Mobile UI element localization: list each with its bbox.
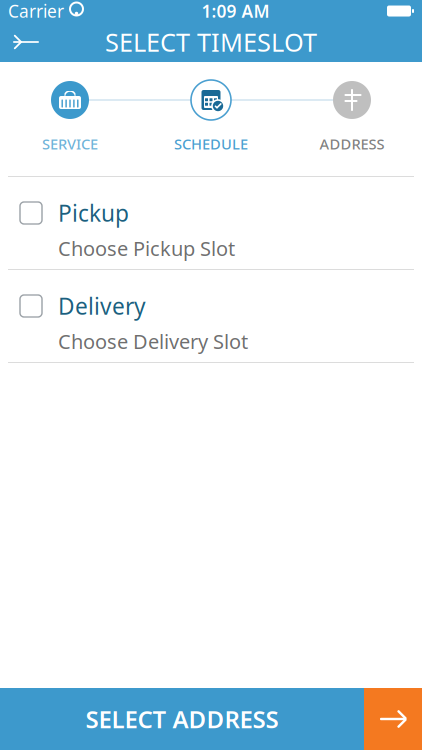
staticText: Carrier xyxy=(8,0,64,22)
staticText: Choose Delivery Slot xyxy=(58,328,248,355)
button[interactable]: Next xyxy=(364,688,422,750)
button[interactable]: Delivery xyxy=(0,270,422,362)
staticText: ADDRESS xyxy=(319,134,384,153)
button[interactable]: Back xyxy=(0,22,52,62)
staticText: SELECT ADDRESS xyxy=(85,703,278,735)
staticText: Choose Pickup Slot xyxy=(58,235,235,262)
staticText: Pickup xyxy=(58,198,129,228)
staticText: SERVICE xyxy=(42,134,98,153)
staticText: 1:09 AM xyxy=(201,0,269,22)
button[interactable]: SELECT ADDRESS xyxy=(0,688,364,750)
staticText: SELECT TIMESLOT xyxy=(105,25,317,59)
staticText: Delivery xyxy=(58,291,146,321)
button[interactable]: Pickup xyxy=(0,177,422,269)
staticText: SCHEDULE xyxy=(174,134,248,153)
